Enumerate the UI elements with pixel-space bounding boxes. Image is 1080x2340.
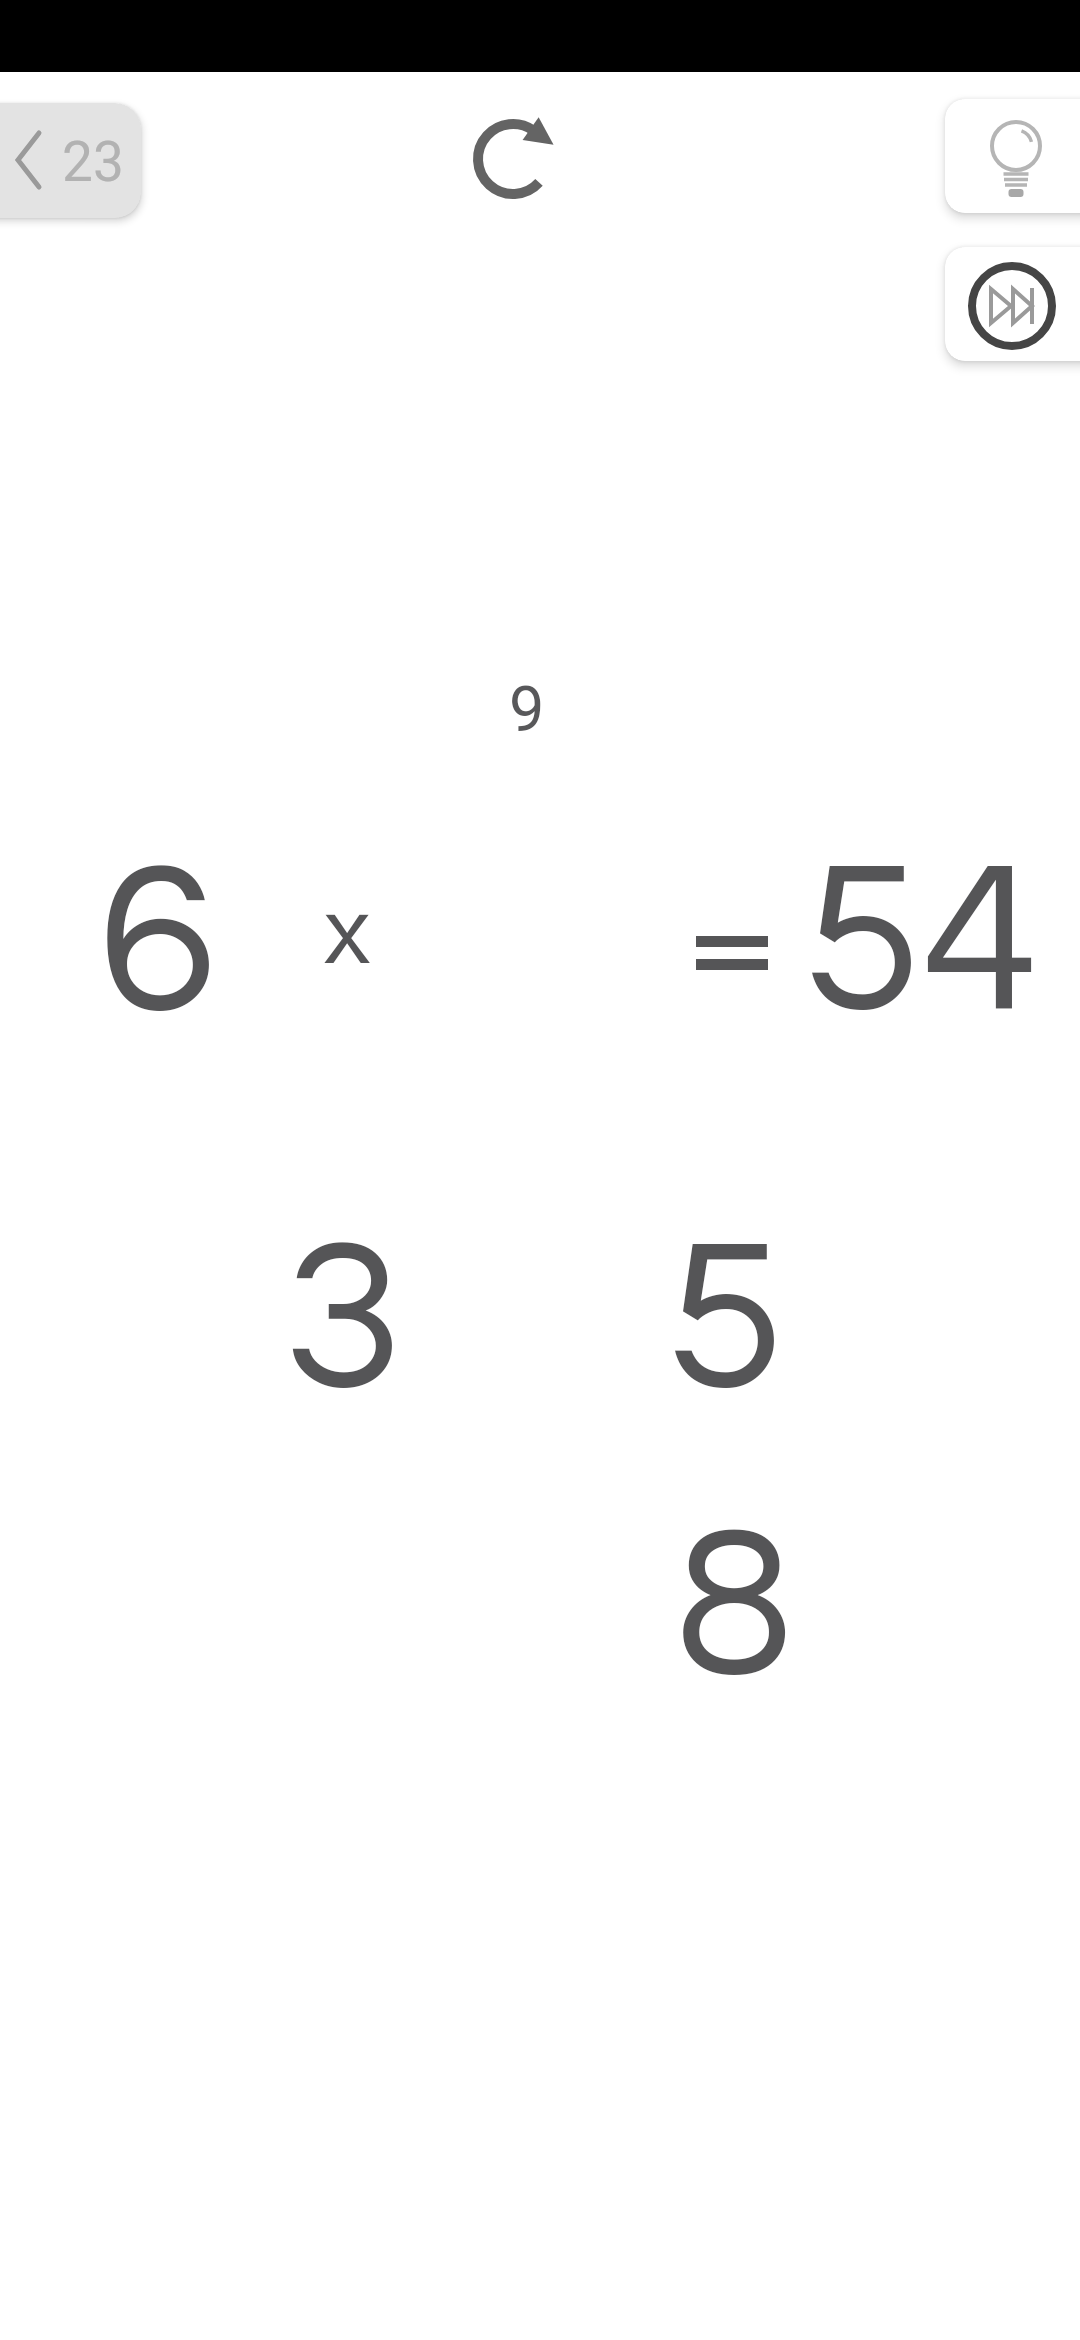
staticText: 3 bbox=[284, 1210, 403, 1431]
button[interactable] bbox=[0, 103, 141, 218]
staticText: 23 bbox=[62, 130, 124, 194]
button[interactable] bbox=[458, 104, 568, 214]
staticText: 6 bbox=[98, 833, 217, 1054]
button[interactable] bbox=[945, 247, 1080, 361]
staticText: 9 bbox=[509, 673, 545, 747]
staticText: 5 bbox=[666, 1210, 785, 1431]
staticText: x bbox=[324, 884, 371, 983]
button[interactable] bbox=[945, 99, 1080, 213]
staticText: 54 bbox=[803, 832, 1040, 1053]
staticText: 8 bbox=[675, 1497, 794, 1718]
